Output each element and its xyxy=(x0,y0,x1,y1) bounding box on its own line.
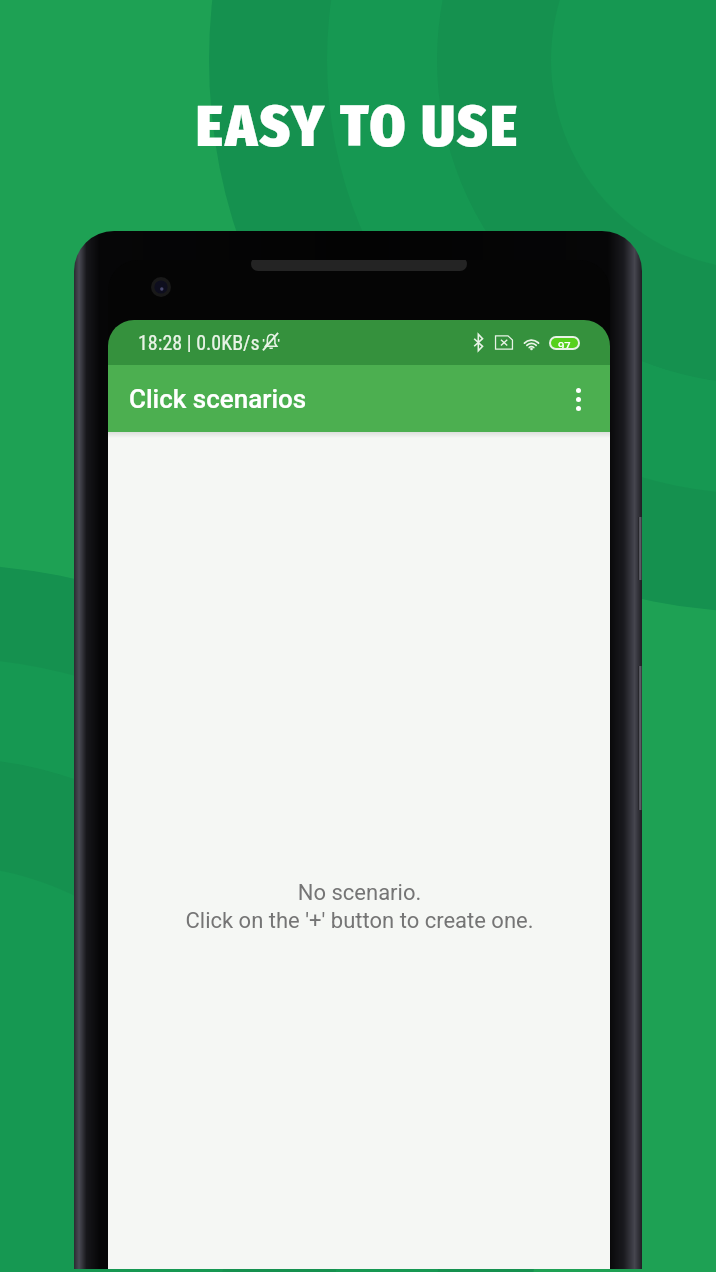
staticText: Click scenarios xyxy=(129,384,307,414)
button[interactable]: More options xyxy=(550,371,606,427)
staticText: 97 xyxy=(558,338,571,348)
staticText: No scenario. Click on the '+' button to … xyxy=(185,880,534,934)
staticText: 18:28 | 0.0KB/s xyxy=(138,331,260,354)
staticText: EASY TO USE xyxy=(196,93,520,161)
